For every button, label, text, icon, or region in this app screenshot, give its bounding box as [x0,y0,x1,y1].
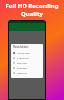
staticText: 1280x720 [17,56,29,59]
staticText: Quality [21,10,43,18]
staticText: 426x240 [17,71,27,74]
button[interactable]: 426x240 [13,70,43,75]
staticText: 640x360 [17,66,27,69]
staticText: 854x480 [17,61,27,64]
button[interactable]: 640x360 [13,65,43,70]
button[interactable]: 1280x720 [13,55,43,60]
staticText: 1920x1080 [17,51,30,54]
staticText: Resolution [13,45,29,49]
button[interactable]: 854x480 [13,60,43,65]
button[interactable]: 1920x1080 [13,50,43,55]
staticText: Full HD Recording [5,2,59,10]
